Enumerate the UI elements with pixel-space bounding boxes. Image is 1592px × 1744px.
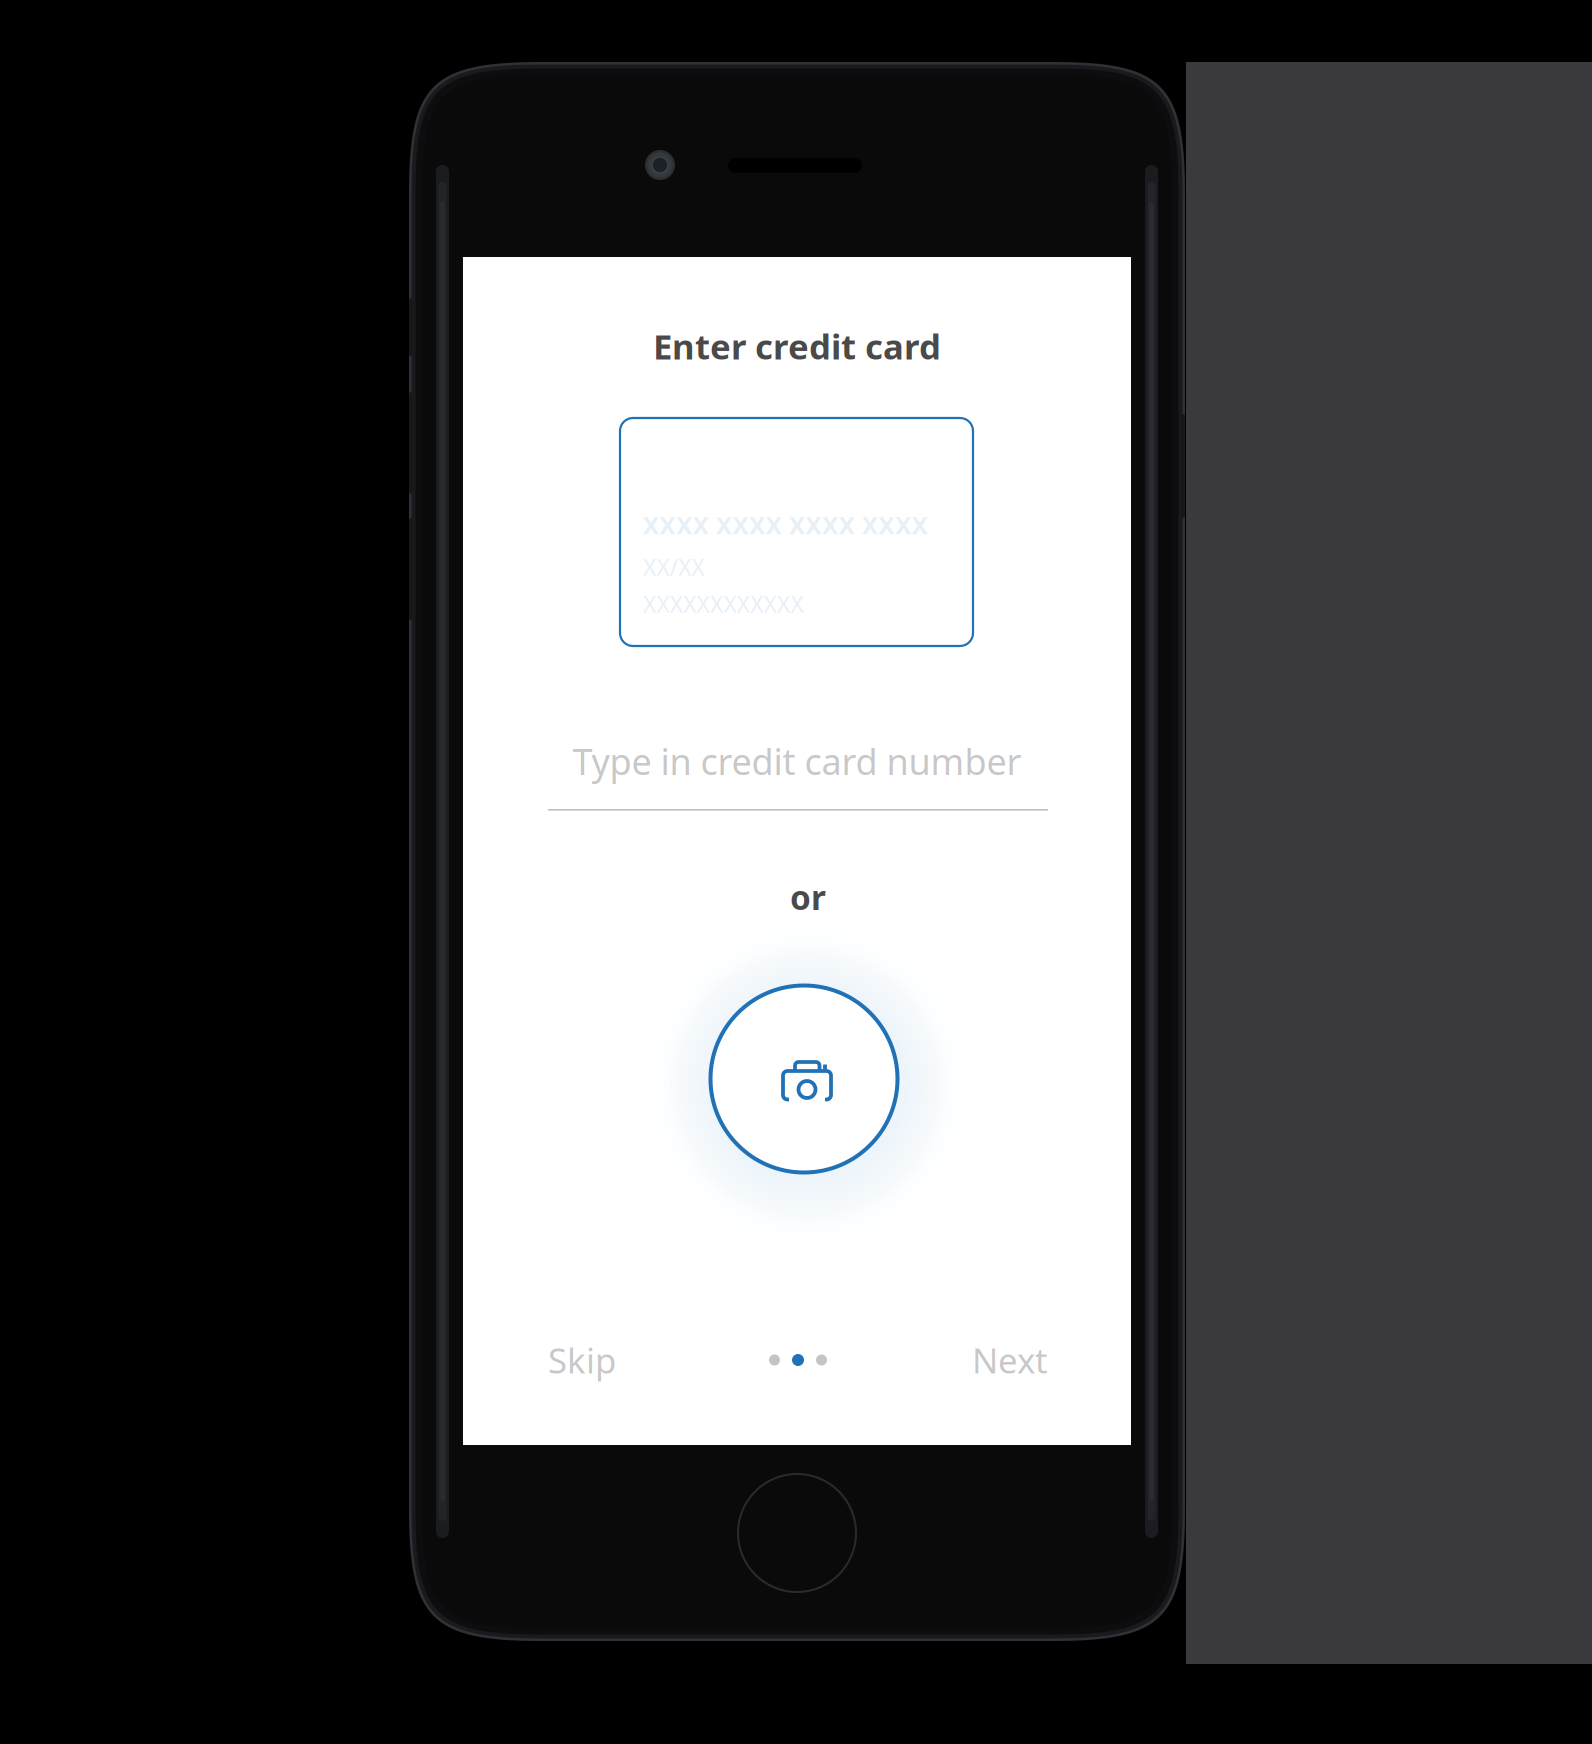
staticText: XXXX XXXX XXXX XXXX (643, 509, 928, 541)
staticText: Next (972, 1337, 1048, 1383)
staticText: Enter credit card (653, 323, 941, 369)
button[interactable]: Skip (548, 1332, 668, 1388)
button[interactable]: Scan card with camera (644, 919, 964, 1239)
button[interactable]: Next (928, 1332, 1048, 1388)
staticText: Type in credit card number (572, 737, 1021, 785)
staticText: or (790, 875, 826, 919)
staticText: XXXXXXXXXXXX (643, 589, 803, 619)
staticText: XX/XX (643, 552, 705, 582)
staticText: Skip (548, 1337, 616, 1383)
